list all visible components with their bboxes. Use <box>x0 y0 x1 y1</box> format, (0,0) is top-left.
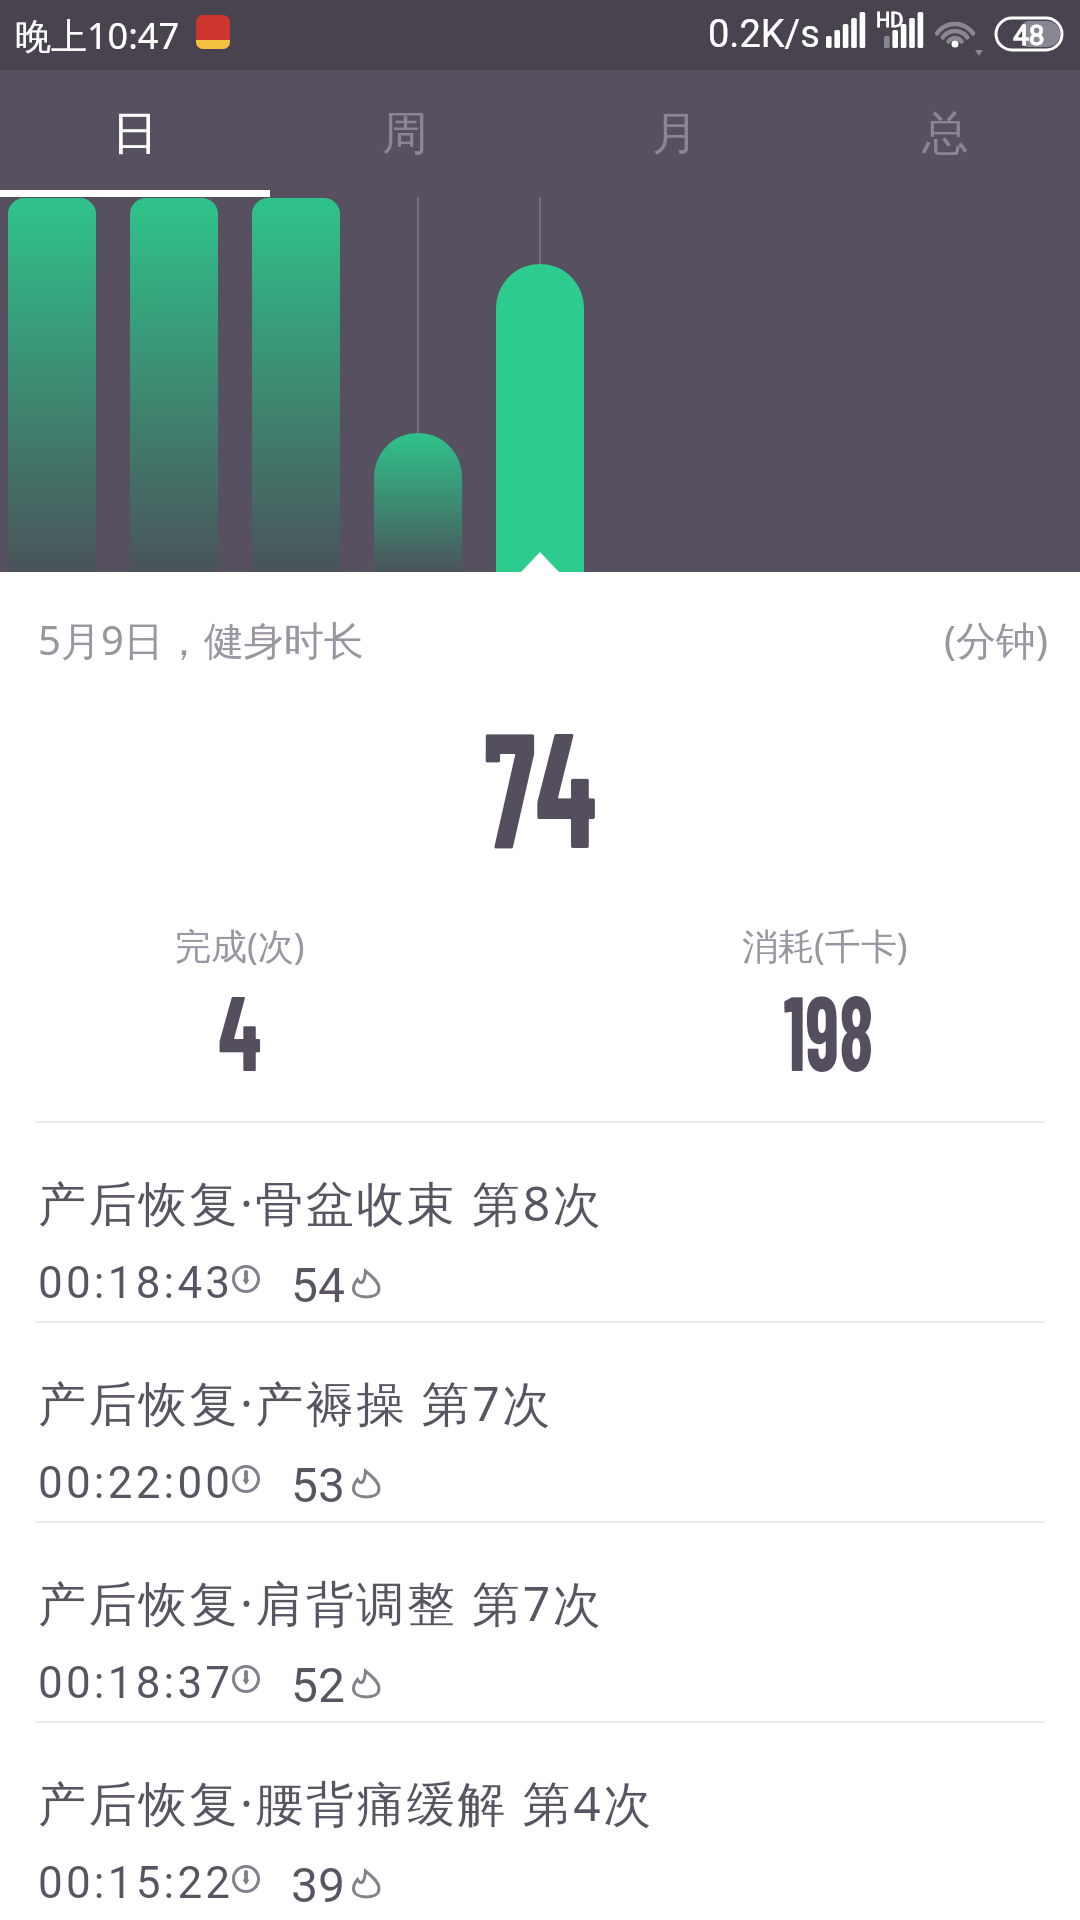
staticText: HD <box>876 8 904 31</box>
staticText: 晚上10:47 <box>15 11 180 60</box>
button[interactable]: 产后恢复·产褥操 第7次 <box>0 1321 1080 1521</box>
staticText: 48 <box>1013 19 1045 52</box>
button[interactable]: 产后恢复·肩背调整 第7次 <box>0 1521 1080 1721</box>
staticText: 5月9日，健身时长 <box>38 612 364 667</box>
staticText: 产后恢复·腰背痛缓解 第4次 <box>38 1770 654 1836</box>
staticText: 74 <box>484 686 597 880</box>
staticText: 产后恢复·肩背调整 第7次 <box>38 1570 604 1636</box>
staticText: 52 <box>291 1657 345 1713</box>
staticText: 39 <box>291 1857 345 1913</box>
staticText: 日 <box>112 105 158 163</box>
staticText: 总 <box>922 105 968 163</box>
button[interactable]: 产后恢复·腰背痛缓解 第4次 <box>0 1721 1080 1920</box>
staticText: 月 <box>652 105 698 163</box>
staticText: 0.2K/s <box>708 12 820 57</box>
staticText: 54 <box>291 1257 345 1313</box>
staticText: 198 <box>784 965 873 1092</box>
button[interactable]: 周 <box>270 70 540 197</box>
staticText: 4 <box>218 965 262 1092</box>
staticText: 产后恢复·骨盆收束 第8次 <box>38 1170 604 1236</box>
staticText: 00:18:43 <box>38 1257 234 1309</box>
button[interactable]: 月 <box>540 70 810 197</box>
staticText: 周 <box>382 105 428 163</box>
staticText: 53 <box>291 1457 345 1513</box>
staticText: 产后恢复·产褥操 第7次 <box>38 1370 553 1436</box>
button[interactable]: 产后恢复·骨盆收束 第8次 <box>0 1121 1080 1321</box>
staticText: 00:22:00 <box>38 1457 234 1509</box>
staticText: (分钟) <box>944 612 1048 667</box>
button[interactable]: 总 <box>810 70 1080 197</box>
staticText: 00:18:37 <box>38 1657 234 1709</box>
staticText: 00:15:22 <box>38 1857 234 1909</box>
staticText: 消耗(千卡) <box>742 921 908 970</box>
staticText: 完成(次) <box>175 921 305 970</box>
button[interactable]: 日 <box>0 70 270 197</box>
